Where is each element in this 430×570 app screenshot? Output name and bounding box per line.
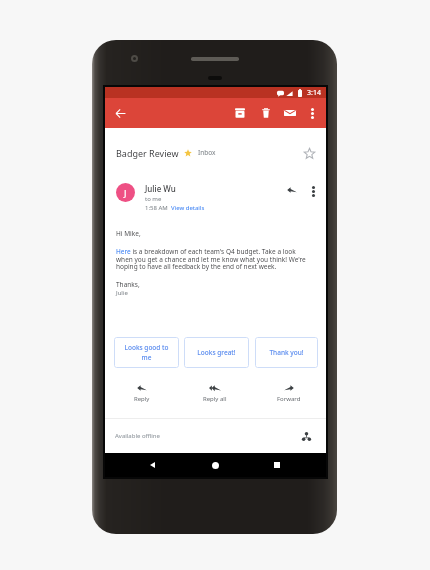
staticText: 3:14 xyxy=(307,88,321,98)
button[interactable]: Home xyxy=(205,455,225,475)
button[interactable]: Reply xyxy=(105,381,178,415)
button[interactable]: Back xyxy=(142,455,162,475)
staticText: Here is a breakdown of each team's Q4 bu… xyxy=(116,247,310,271)
staticText: Julie Wu xyxy=(145,183,176,194)
staticText: Thanks, xyxy=(116,280,140,289)
button[interactable]: Reply all xyxy=(178,381,252,415)
staticText: Hi Mike, xyxy=(116,229,141,238)
button[interactable]: Back xyxy=(110,103,130,123)
staticText: Badger Review xyxy=(116,147,179,159)
button[interactable]: Star xyxy=(301,145,317,161)
button[interactable]: Reply xyxy=(284,183,300,199)
staticText: Julie xyxy=(116,289,128,297)
button[interactable]: Recents xyxy=(267,455,287,475)
staticText: Looks good to me xyxy=(119,343,174,362)
button[interactable]: Archive xyxy=(230,103,250,123)
staticText: Available offline xyxy=(115,432,160,440)
button[interactable]: More options xyxy=(302,103,322,123)
button[interactable]: Looks great! xyxy=(184,337,249,368)
button[interactable]: Forward xyxy=(252,381,326,415)
staticText: 1:58 AM xyxy=(145,204,168,212)
button[interactable]: Mark unread xyxy=(280,103,300,123)
staticText: View details xyxy=(171,204,205,212)
staticText: Inbox xyxy=(198,148,216,157)
staticText: Reply all xyxy=(203,395,227,403)
button[interactable]: Delete xyxy=(256,103,276,123)
button[interactable]: Thank you! xyxy=(255,337,318,368)
staticText: Forward xyxy=(277,395,301,403)
staticText: Looks great! xyxy=(197,348,236,357)
button[interactable]: Looks good to me xyxy=(114,337,179,368)
staticText: Thank you! xyxy=(269,348,304,357)
staticText: to me xyxy=(145,195,162,203)
button[interactable]: Sync xyxy=(299,429,313,443)
staticText: J xyxy=(124,187,127,199)
staticText: Reply xyxy=(134,395,150,403)
button[interactable]: More xyxy=(305,183,321,199)
